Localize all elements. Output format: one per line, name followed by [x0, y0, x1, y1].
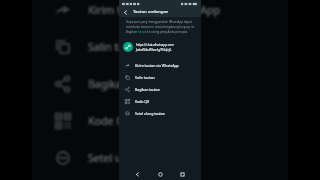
- staticText: Kode QR: [135, 99, 150, 104]
- staticText: Siapa pun yang menggunakan WhatsApp dapa…: [126, 20, 196, 34]
- button[interactable]: Bagikan tautan: [119, 83, 201, 95]
- button[interactable]: Setel ulang tautan: [119, 107, 201, 119]
- button[interactable]: Salin tautan: [119, 71, 201, 83]
- button[interactable]: Kirim tautan via WhatsApp: [119, 59, 201, 71]
- staticText: Setel ulang tautan: [88, 151, 179, 165]
- staticText: https://chat.whatsapp.com JwbvNtksWhozLg…: [136, 43, 174, 52]
- staticText: Kirim tautan via WhatsApp: [88, 3, 220, 17]
- button[interactable]: Home: [156, 170, 165, 179]
- button[interactable]: Back: [133, 170, 142, 179]
- staticText: Kirim tautan via WhatsApp: [135, 63, 179, 68]
- staticText: Bagikan tautan: [135, 87, 160, 92]
- staticText: Salin tautan: [88, 40, 147, 54]
- staticText: Salin tautan: [135, 75, 155, 80]
- button[interactable]: https://chat.whatsapp.com JwbvNtksWhozLg…: [119, 42, 201, 52]
- staticText: Setel ulang tautan: [135, 111, 165, 116]
- staticText: Tautan undangan: [133, 9, 169, 15]
- button[interactable]: Back: [121, 8, 130, 17]
- button[interactable]: Kode QR: [119, 95, 201, 107]
- staticText: Kode QR: [88, 114, 131, 128]
- button[interactable]: Recent apps: [178, 170, 187, 179]
- staticText: Bagikan tautan: [88, 77, 164, 91]
